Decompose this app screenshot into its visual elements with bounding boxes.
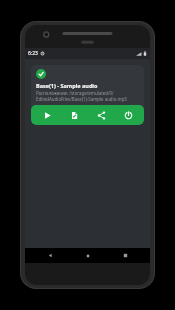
staticText: EditedAudioFiles/Base(1)-Sample audio.mp… (36, 96, 127, 102)
button[interactable]: Back (37, 248, 63, 263)
button[interactable]: Share (90, 105, 112, 125)
button[interactable]: Edit file (63, 105, 85, 125)
staticText: Расположение: /storage/emulated/0/ (36, 90, 114, 96)
staticText: 6:23 (28, 50, 38, 57)
button[interactable]: Play (36, 105, 58, 125)
button[interactable]: Power (117, 105, 139, 125)
button[interactable]: Home (75, 248, 101, 263)
button[interactable]: Recents (112, 248, 138, 263)
staticText: Base(1) - Sample audio (36, 82, 98, 89)
button[interactable]: Base(1) - Sample audio (31, 65, 144, 125)
